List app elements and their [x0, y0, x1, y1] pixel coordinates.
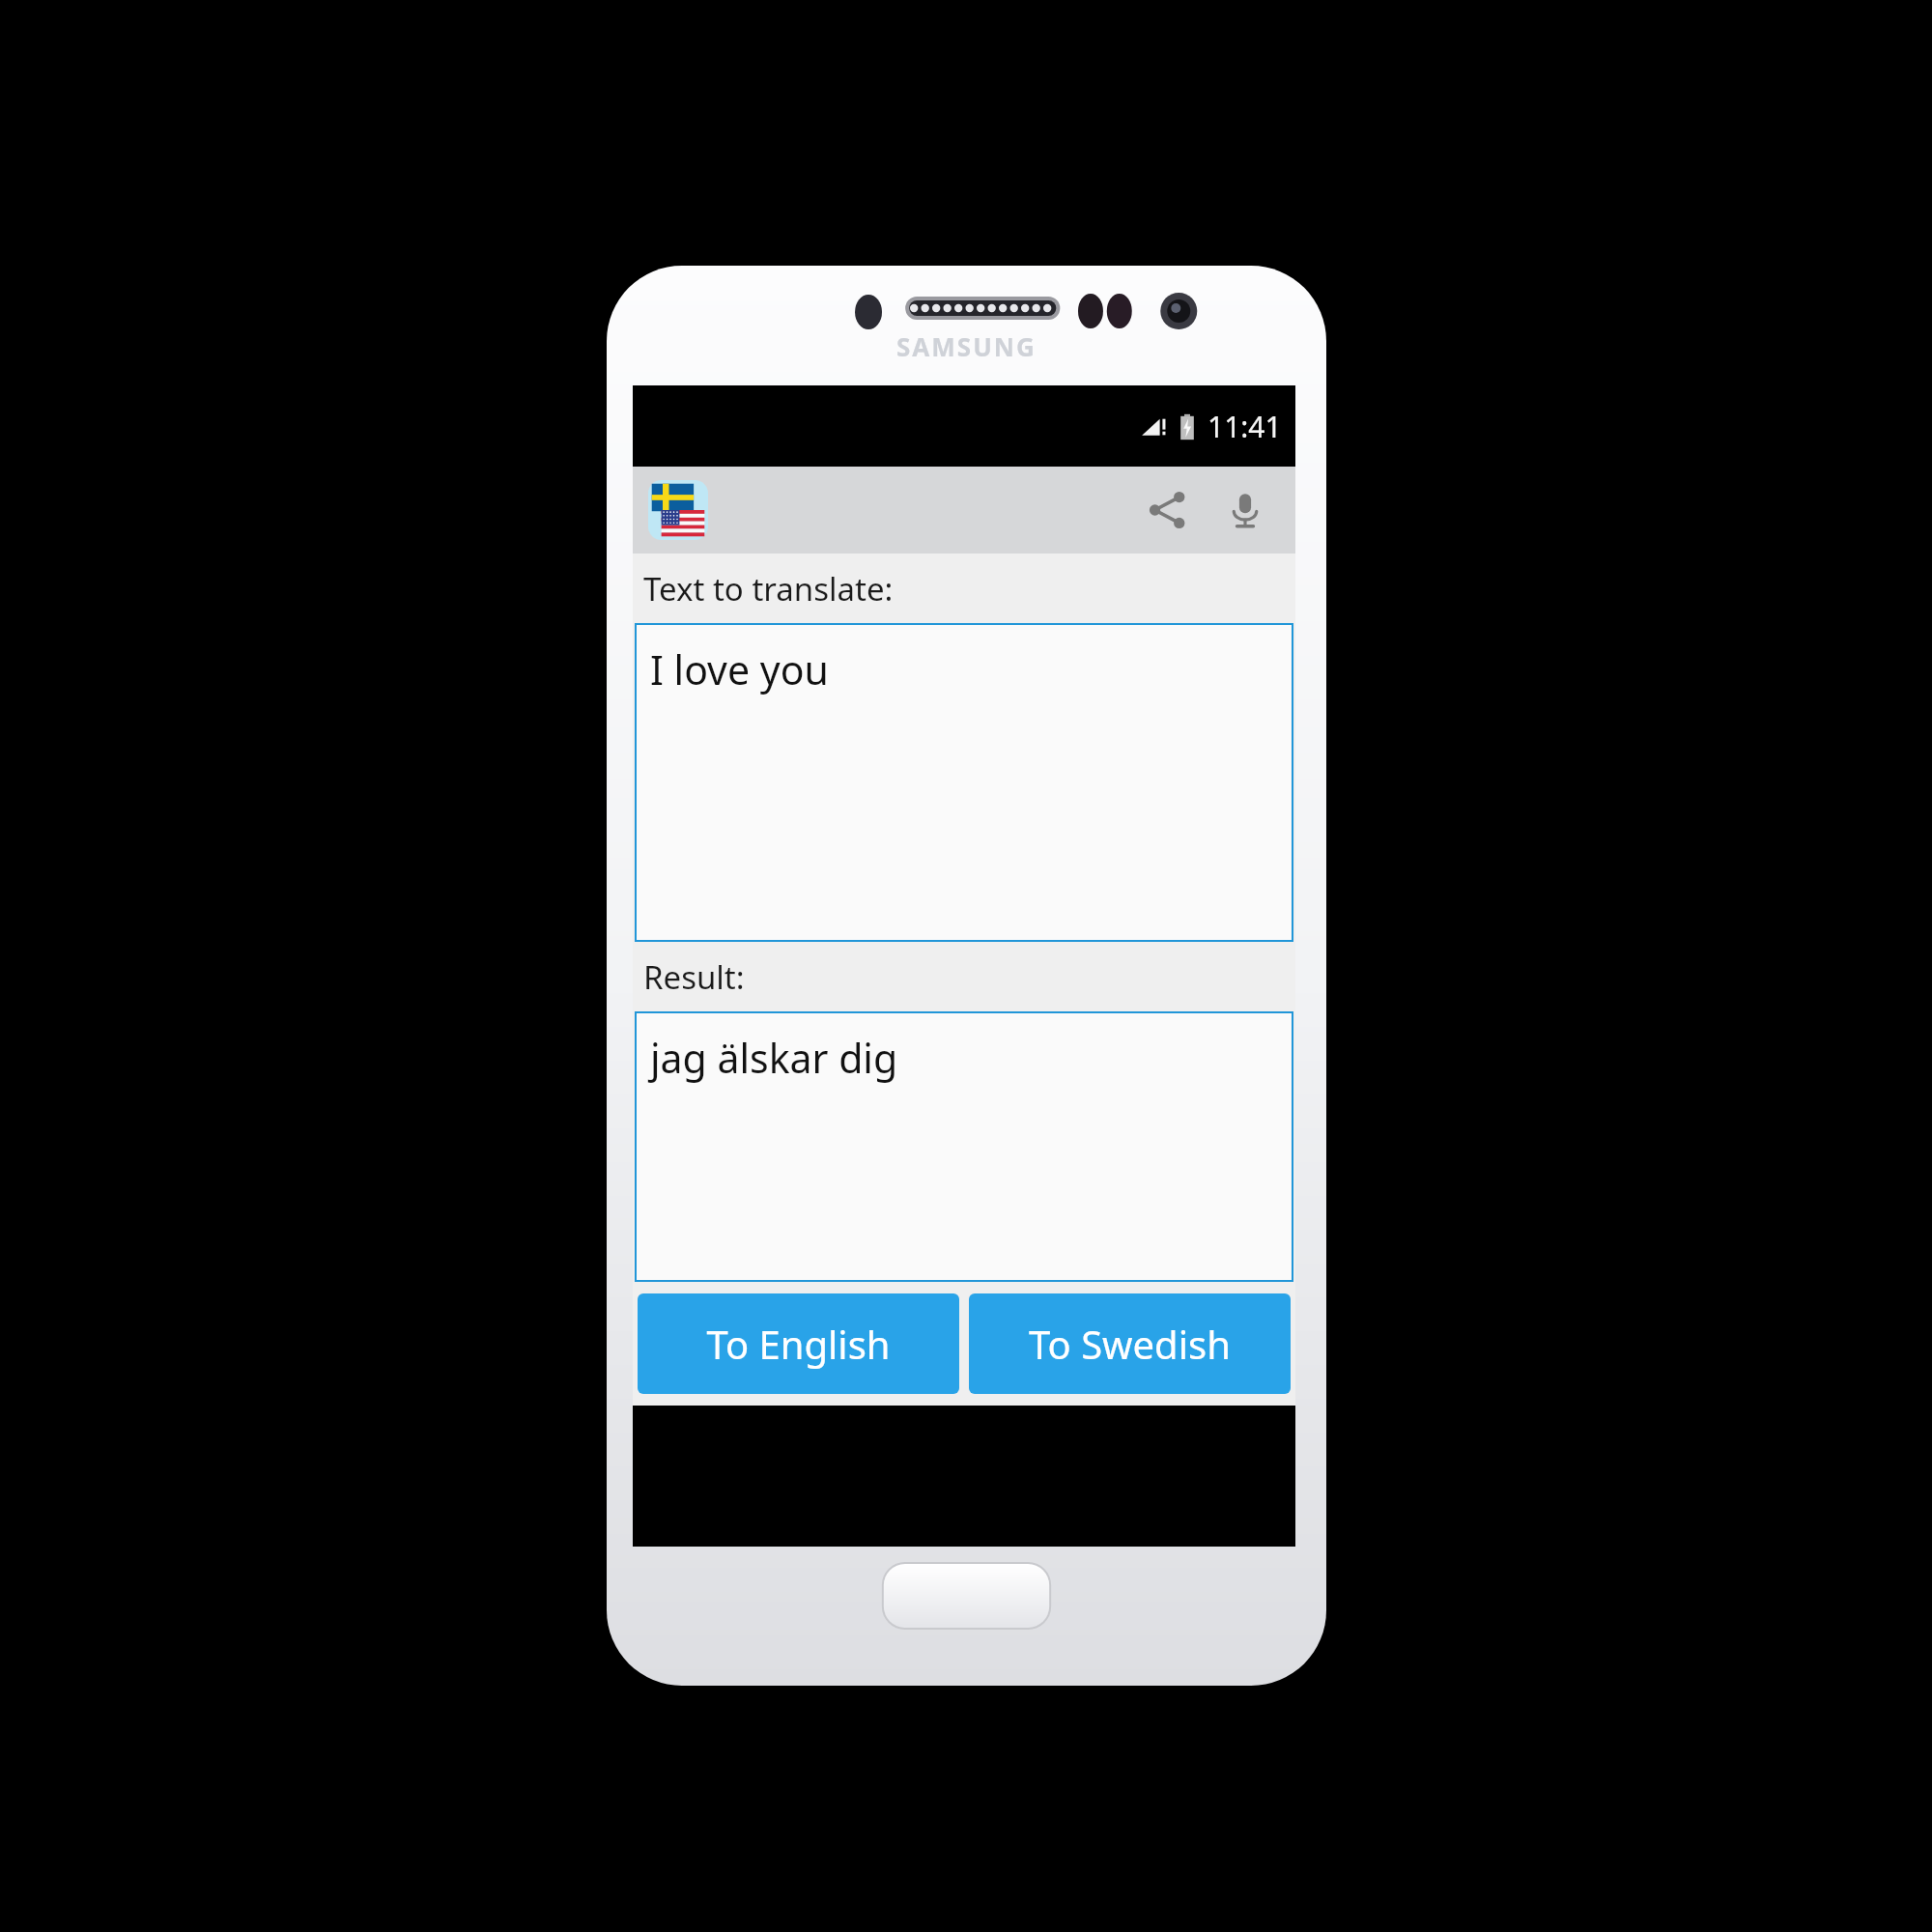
button[interactable]: App icon [648, 480, 708, 540]
staticText: I love you [650, 642, 829, 696]
button[interactable]: jag älskar dig [635, 1011, 1293, 1282]
button[interactable]: I love you [635, 623, 1293, 942]
staticText: jag älskar dig [650, 1031, 898, 1085]
button[interactable]: Share [1129, 467, 1207, 554]
staticText: Result: [643, 955, 745, 999]
button[interactable]: To English [638, 1293, 959, 1394]
staticText: SAMSUNG [896, 329, 1037, 363]
button[interactable]: Voice input [1207, 467, 1284, 554]
staticText: To Swedish [1029, 1318, 1231, 1370]
staticText: Text to translate: [643, 567, 894, 611]
button[interactable]: To Swedish [969, 1293, 1291, 1394]
staticText: To English [706, 1318, 891, 1370]
staticText: 11:41 [1207, 407, 1282, 446]
